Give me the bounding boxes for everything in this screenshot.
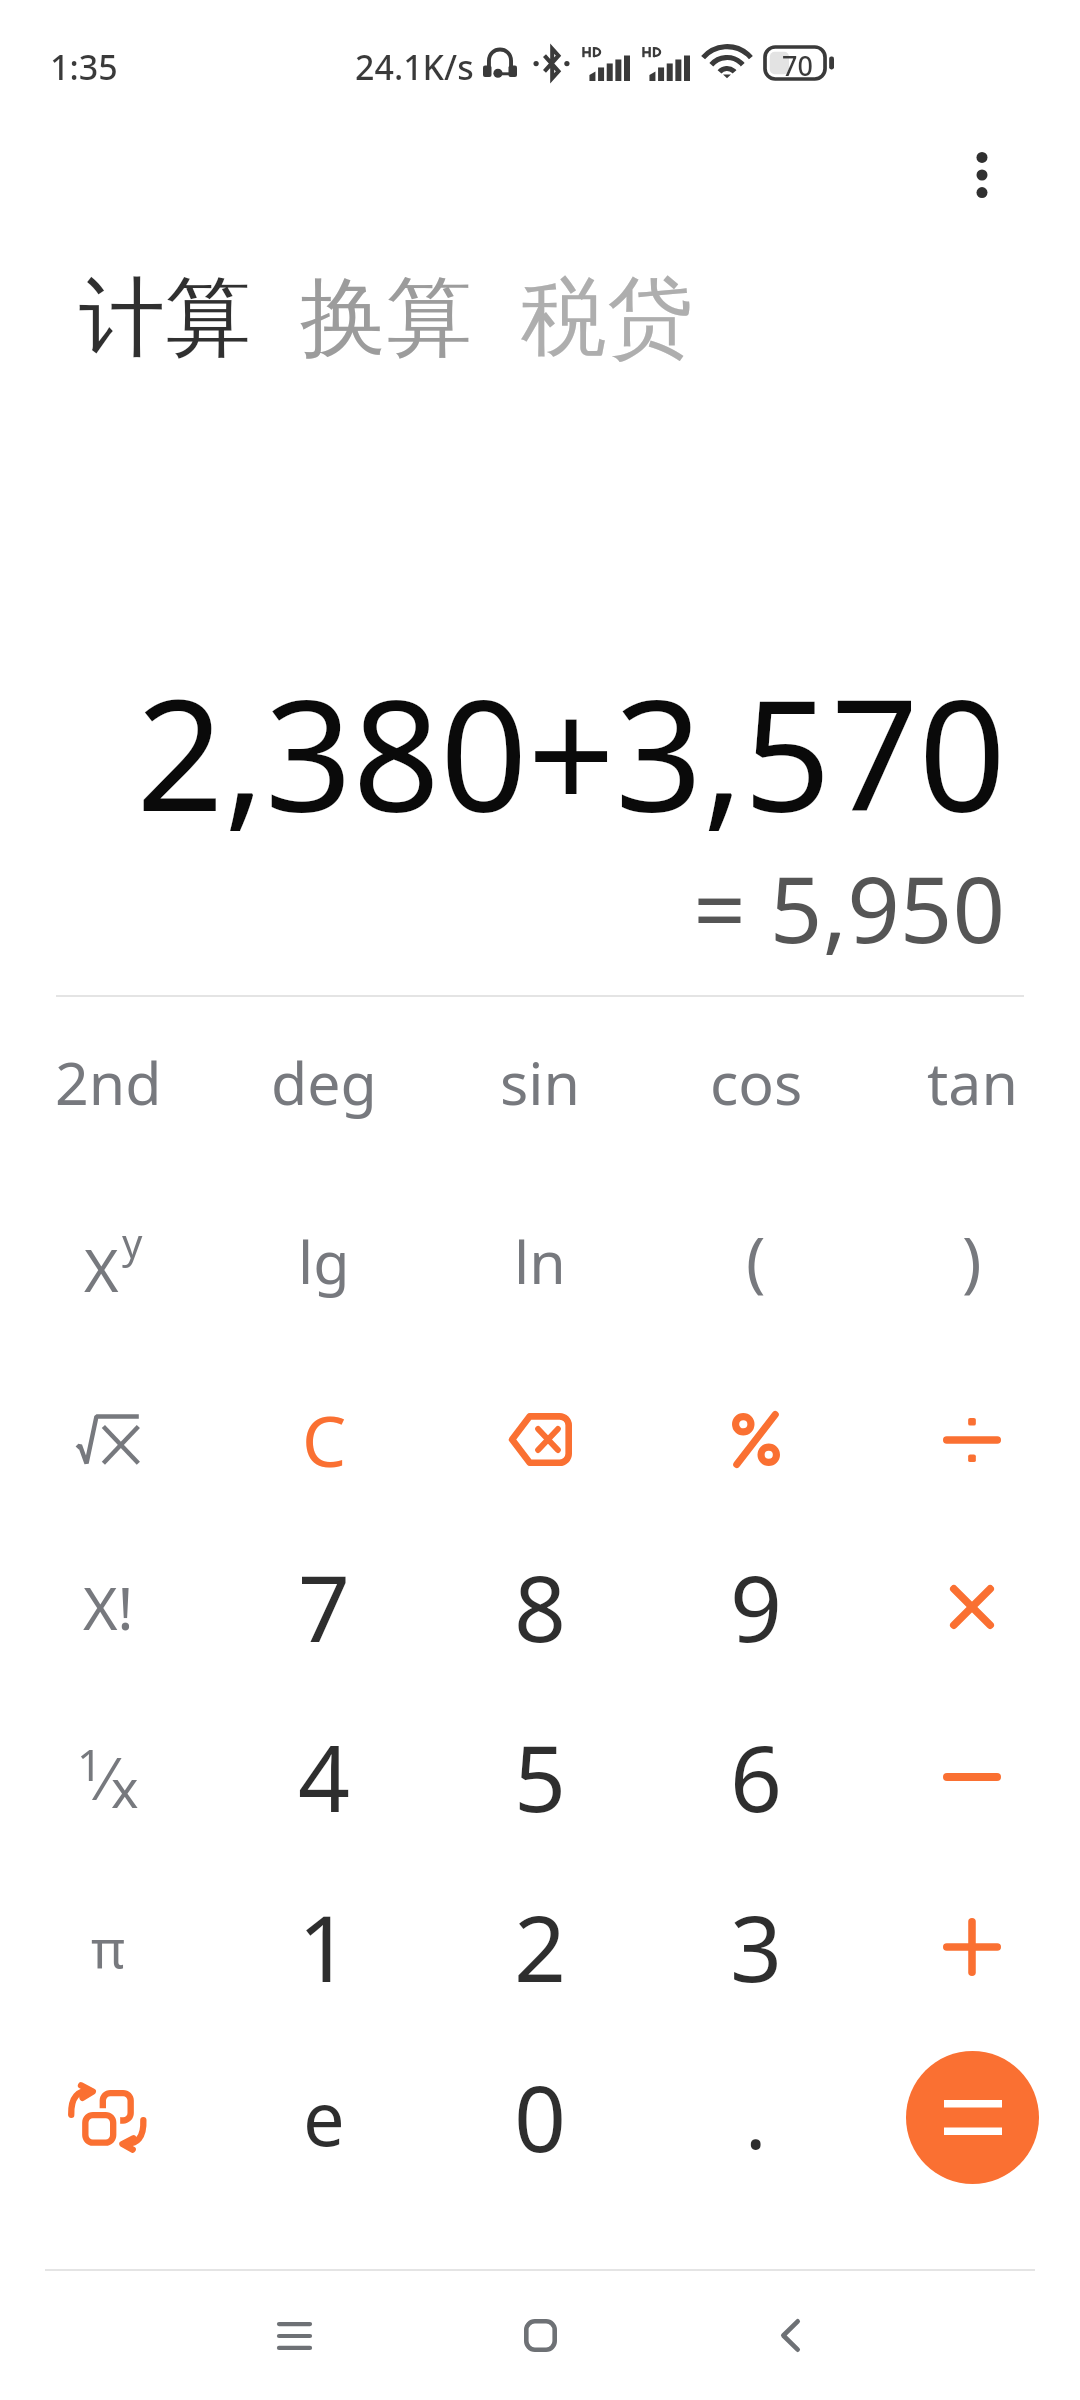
- staticText: .: [745, 2063, 767, 2172]
- button[interactable]: cos: [648, 992, 864, 1171]
- button[interactable]: 5: [432, 1692, 648, 1862]
- button[interactable]: 7: [216, 1522, 432, 1692]
- staticText: 2,380+3,570: [0, 647, 1006, 855]
- button[interactable]: 2: [432, 1862, 648, 2032]
- staticText: 3: [730, 1885, 783, 2009]
- button[interactable]: Square root: [0, 1350, 216, 1529]
- button[interactable]: π: [0, 1862, 216, 2032]
- staticText: e: [303, 2067, 345, 2168]
- button[interactable]: Home: [440, 2253, 640, 2400]
- button[interactable]: tan: [864, 992, 1080, 1171]
- staticText: = 5,950: [0, 845, 1005, 970]
- button[interactable]: ): [864, 1171, 1080, 1350]
- staticText: 2: [514, 1885, 567, 2009]
- staticText: sin: [500, 1042, 580, 1122]
- button[interactable]: 4: [216, 1692, 432, 1862]
- staticText: (: [746, 1216, 766, 1305]
- button[interactable]: 8: [432, 1522, 648, 1692]
- button[interactable]: Convert: [0, 2032, 216, 2202]
- button[interactable]: 6: [648, 1692, 864, 1862]
- staticText: tan: [927, 1042, 1018, 1122]
- staticText: y: [122, 1215, 143, 1269]
- button[interactable]: lg: [216, 1171, 432, 1350]
- button[interactable]: X!: [0, 1522, 216, 1692]
- button[interactable]: .: [648, 2032, 864, 2202]
- staticText: 70: [782, 47, 813, 79]
- staticText: X: [84, 1229, 119, 1309]
- staticText: 2nd: [55, 1042, 162, 1122]
- staticText: 5: [514, 1715, 567, 1839]
- button[interactable]: e: [216, 2032, 432, 2202]
- button[interactable]: ln: [432, 1171, 648, 1350]
- staticText: 税贷: [521, 264, 693, 372]
- staticText: 换算: [300, 264, 472, 372]
- staticText: 1: [77, 1734, 103, 1794]
- staticText: ): [962, 1216, 982, 1305]
- button[interactable]: Divide: [864, 1350, 1080, 1529]
- button[interactable]: Back: [690, 2253, 890, 2400]
- button[interactable]: 9: [648, 1522, 864, 1692]
- staticText: ⁄: [103, 1738, 111, 1817]
- staticText: 24.1K/s: [355, 44, 474, 90]
- button[interactable]: sin: [432, 992, 648, 1171]
- button[interactable]: Recents: [194, 2253, 394, 2400]
- button[interactable]: Percent: [648, 1350, 864, 1529]
- button[interactable]: deg: [216, 992, 432, 1171]
- button[interactable]: Backspace: [432, 1350, 648, 1529]
- button[interactable]: Minus: [864, 1692, 1080, 1862]
- staticText: 0: [514, 2055, 567, 2179]
- staticText: 9: [730, 1545, 783, 1669]
- button[interactable]: 计算: [63, 254, 267, 382]
- staticText: deg: [271, 1042, 377, 1122]
- staticText: π: [91, 1912, 125, 1983]
- staticText: 计算: [79, 264, 251, 372]
- button[interactable]: One over x: [0, 1692, 216, 1862]
- staticText: 8: [514, 1545, 567, 1669]
- staticText: X!: [83, 1567, 134, 1647]
- button[interactable]: 0: [432, 2032, 648, 2202]
- staticText: 4: [298, 1715, 351, 1839]
- button[interactable]: 3: [648, 1862, 864, 2032]
- button[interactable]: C: [216, 1350, 432, 1529]
- staticText: 7: [298, 1545, 351, 1669]
- staticText: 6: [730, 1715, 783, 1839]
- staticText: cos: [710, 1042, 803, 1122]
- staticText: ln: [514, 1221, 566, 1301]
- button[interactable]: (: [648, 1171, 864, 1350]
- button[interactable]: Equals: [864, 2032, 1080, 2202]
- staticText: 1: [298, 1885, 351, 2009]
- staticText: 1:35: [50, 44, 118, 90]
- button[interactable]: Plus: [864, 1862, 1080, 2032]
- button[interactable]: Multiply: [864, 1522, 1080, 1692]
- staticText: x: [111, 1752, 139, 1823]
- staticText: lg: [298, 1221, 350, 1301]
- button[interactable]: 税贷: [505, 254, 709, 382]
- button[interactable]: 2nd: [0, 992, 216, 1171]
- button[interactable]: X to the power of y: [0, 1171, 216, 1350]
- staticText: C: [302, 1392, 347, 1487]
- button[interactable]: 换算: [284, 254, 488, 382]
- button[interactable]: 1: [216, 1862, 432, 2032]
- button[interactable]: More options: [932, 125, 1032, 225]
